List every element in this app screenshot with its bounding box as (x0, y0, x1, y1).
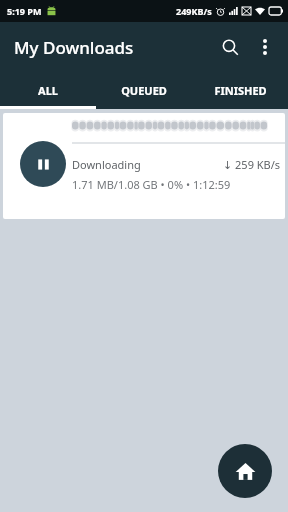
button[interactable]: More options (248, 30, 282, 64)
staticText: ALL (38, 83, 58, 98)
staticText: ↓ 259 KB/s | ↑ 0.00 B/s (223, 157, 285, 172)
button[interactable]: Search (212, 29, 248, 65)
staticText: 249KB/s (176, 5, 212, 17)
staticText: My Downloads (14, 36, 134, 59)
staticText: QUEUED (121, 83, 167, 98)
button[interactable]: ALL (0, 72, 96, 109)
button[interactable]: Pause download (3, 113, 285, 219)
button[interactable]: FINISHED (192, 72, 288, 109)
button[interactable]: QUEUED (96, 72, 192, 109)
staticText: Downloading (72, 157, 141, 172)
button[interactable]: Home (218, 444, 272, 498)
staticText: FINISHED (214, 83, 267, 98)
button[interactable]: Pause download (20, 141, 66, 187)
staticText: 1.71 MB/1.08 GB • 0% • 1:12:59 (72, 177, 231, 192)
staticText: 5:19 PM (7, 5, 42, 17)
